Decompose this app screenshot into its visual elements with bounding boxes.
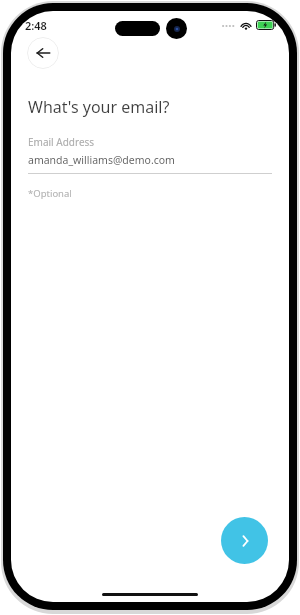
staticText: Email Address	[28, 135, 95, 149]
button[interactable]: amanda_williams@demo.com	[11, 153, 289, 167]
button[interactable]: Back	[27, 37, 59, 69]
staticText: 2:48	[25, 18, 47, 33]
button[interactable]: Next	[221, 517, 268, 564]
staticText: amanda_williams@demo.com	[28, 153, 175, 167]
staticText: What's your email?	[28, 96, 170, 118]
staticText: *Optional	[28, 187, 72, 200]
